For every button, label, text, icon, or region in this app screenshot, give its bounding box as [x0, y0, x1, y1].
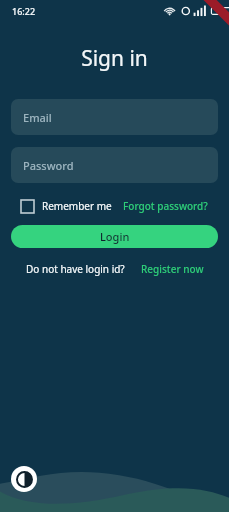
button[interactable]: Register now	[141, 262, 204, 276]
staticText: Login	[100, 229, 130, 244]
staticText: Do not have login id?	[26, 262, 125, 276]
staticText: Register now	[141, 262, 204, 276]
button[interactable]: Remember me	[21, 199, 112, 213]
button[interactable]: Password	[11, 147, 218, 183]
button[interactable]: Login	[11, 225, 218, 248]
staticText: Email	[23, 110, 52, 125]
button[interactable]: Forgot password?	[123, 199, 208, 213]
staticText: Forgot password?	[123, 199, 208, 213]
staticText: Remember me	[42, 199, 112, 213]
staticText: Password	[23, 158, 74, 173]
button[interactable]: Toggle theme	[11, 466, 37, 492]
staticText: Sign in	[0, 44, 229, 73]
button[interactable]: Email	[11, 99, 218, 135]
staticText: 16:22	[12, 5, 36, 17]
